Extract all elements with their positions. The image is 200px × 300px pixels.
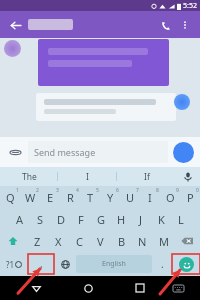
button[interactable]: Back <box>10 276 62 300</box>
staticText: E <box>47 190 54 205</box>
staticText: Y <box>107 190 114 205</box>
staticText: O <box>166 190 175 205</box>
button[interactable]: L <box>171 208 191 230</box>
button[interactable]: Q <box>0 186 20 208</box>
button[interactable]: Shift <box>0 230 26 252</box>
button[interactable]: G <box>91 208 111 230</box>
staticText: R <box>67 190 74 205</box>
staticText: English <box>102 259 126 269</box>
staticText: W <box>25 190 36 205</box>
button[interactable]: Hide keyboard <box>166 276 190 300</box>
staticText: 9 <box>176 187 179 194</box>
staticText: Z <box>34 234 41 249</box>
button[interactable]: Recent apps <box>114 276 166 300</box>
staticText: J <box>139 212 143 227</box>
button[interactable]: . <box>152 252 172 276</box>
staticText: U <box>126 190 135 205</box>
button[interactable]: N <box>132 230 153 252</box>
staticText: S <box>37 212 44 227</box>
staticText: B <box>118 234 126 249</box>
staticText: 6 <box>116 187 119 194</box>
staticText: 5 <box>96 187 99 194</box>
staticText: V <box>97 234 104 249</box>
button[interactable]: H <box>111 208 131 230</box>
button[interactable]: M <box>153 230 174 252</box>
button[interactable]: W <box>20 186 40 208</box>
button[interactable]: B <box>111 230 132 252</box>
button[interactable]: Send message <box>28 141 168 163</box>
button[interactable]: Backspace <box>174 230 200 252</box>
staticText: M <box>159 234 169 249</box>
button[interactable]: Z <box>26 230 48 252</box>
button[interactable]: More options <box>176 16 194 34</box>
button[interactable]: P <box>180 186 200 208</box>
staticText: I <box>86 171 89 183</box>
button[interactable]: Voice input <box>176 167 200 186</box>
staticText: N <box>138 234 147 249</box>
staticText: 7 <box>136 187 139 194</box>
button[interactable]: J <box>131 208 151 230</box>
staticText: The <box>22 171 37 183</box>
button[interactable]: R <box>60 186 80 208</box>
button[interactable]: Home <box>62 276 114 300</box>
button[interactable]: ?1 <box>0 252 28 276</box>
button[interactable] <box>38 39 169 86</box>
staticText: H <box>117 212 126 227</box>
staticText: P <box>187 190 194 205</box>
button[interactable]: O <box>160 186 180 208</box>
button[interactable]: C <box>69 230 90 252</box>
staticText: X <box>55 234 62 249</box>
button[interactable]: E <box>40 186 60 208</box>
button[interactable]: A <box>9 208 30 230</box>
button[interactable]: The <box>0 167 58 186</box>
staticText: D <box>57 212 66 227</box>
staticText: Send message <box>34 146 96 158</box>
button[interactable]: I <box>140 186 160 208</box>
staticText: G <box>97 212 106 227</box>
staticText: Q <box>6 190 15 205</box>
button[interactable]: I <box>58 167 117 186</box>
staticText: 5:52 <box>183 1 197 11</box>
button[interactable]: X <box>48 230 69 252</box>
staticText: . <box>161 257 164 271</box>
button[interactable]: If <box>117 167 176 186</box>
staticText: C <box>76 234 83 249</box>
button[interactable]: S <box>30 208 51 230</box>
button[interactable]: T <box>80 186 100 208</box>
button[interactable]: , <box>28 254 54 274</box>
staticText: 1 <box>16 187 19 194</box>
button[interactable]: Attach <box>6 143 24 161</box>
button[interactable]: U <box>120 186 140 208</box>
staticText: I <box>148 190 152 205</box>
button[interactable]: K <box>151 208 171 230</box>
staticText: , <box>40 257 43 271</box>
staticText: 3 <box>56 187 59 194</box>
staticText: A <box>16 212 24 227</box>
staticText: K <box>158 212 165 227</box>
staticText: 0 <box>196 187 199 194</box>
button[interactable] <box>36 93 176 121</box>
button[interactable]: F <box>71 208 91 230</box>
staticText: 2 <box>36 187 39 194</box>
button[interactable]: Change language <box>54 252 76 276</box>
button[interactable]: Send <box>173 142 194 163</box>
staticText: 8 <box>156 187 159 194</box>
button[interactable]: Call <box>156 15 176 35</box>
staticText: F <box>78 212 84 227</box>
staticText: T <box>87 190 94 205</box>
button[interactable]: Back <box>6 16 24 34</box>
button[interactable]: English <box>76 255 152 273</box>
staticText: If <box>144 171 150 183</box>
staticText: ?1 <box>6 259 15 270</box>
button[interactable]: V <box>90 230 111 252</box>
button[interactable]: D <box>51 208 71 230</box>
button[interactable] <box>28 19 73 30</box>
button[interactable]: Emoji <box>172 254 200 274</box>
staticText: L <box>178 212 184 227</box>
button[interactable]: Y <box>100 186 120 208</box>
staticText: 4 <box>76 187 79 194</box>
